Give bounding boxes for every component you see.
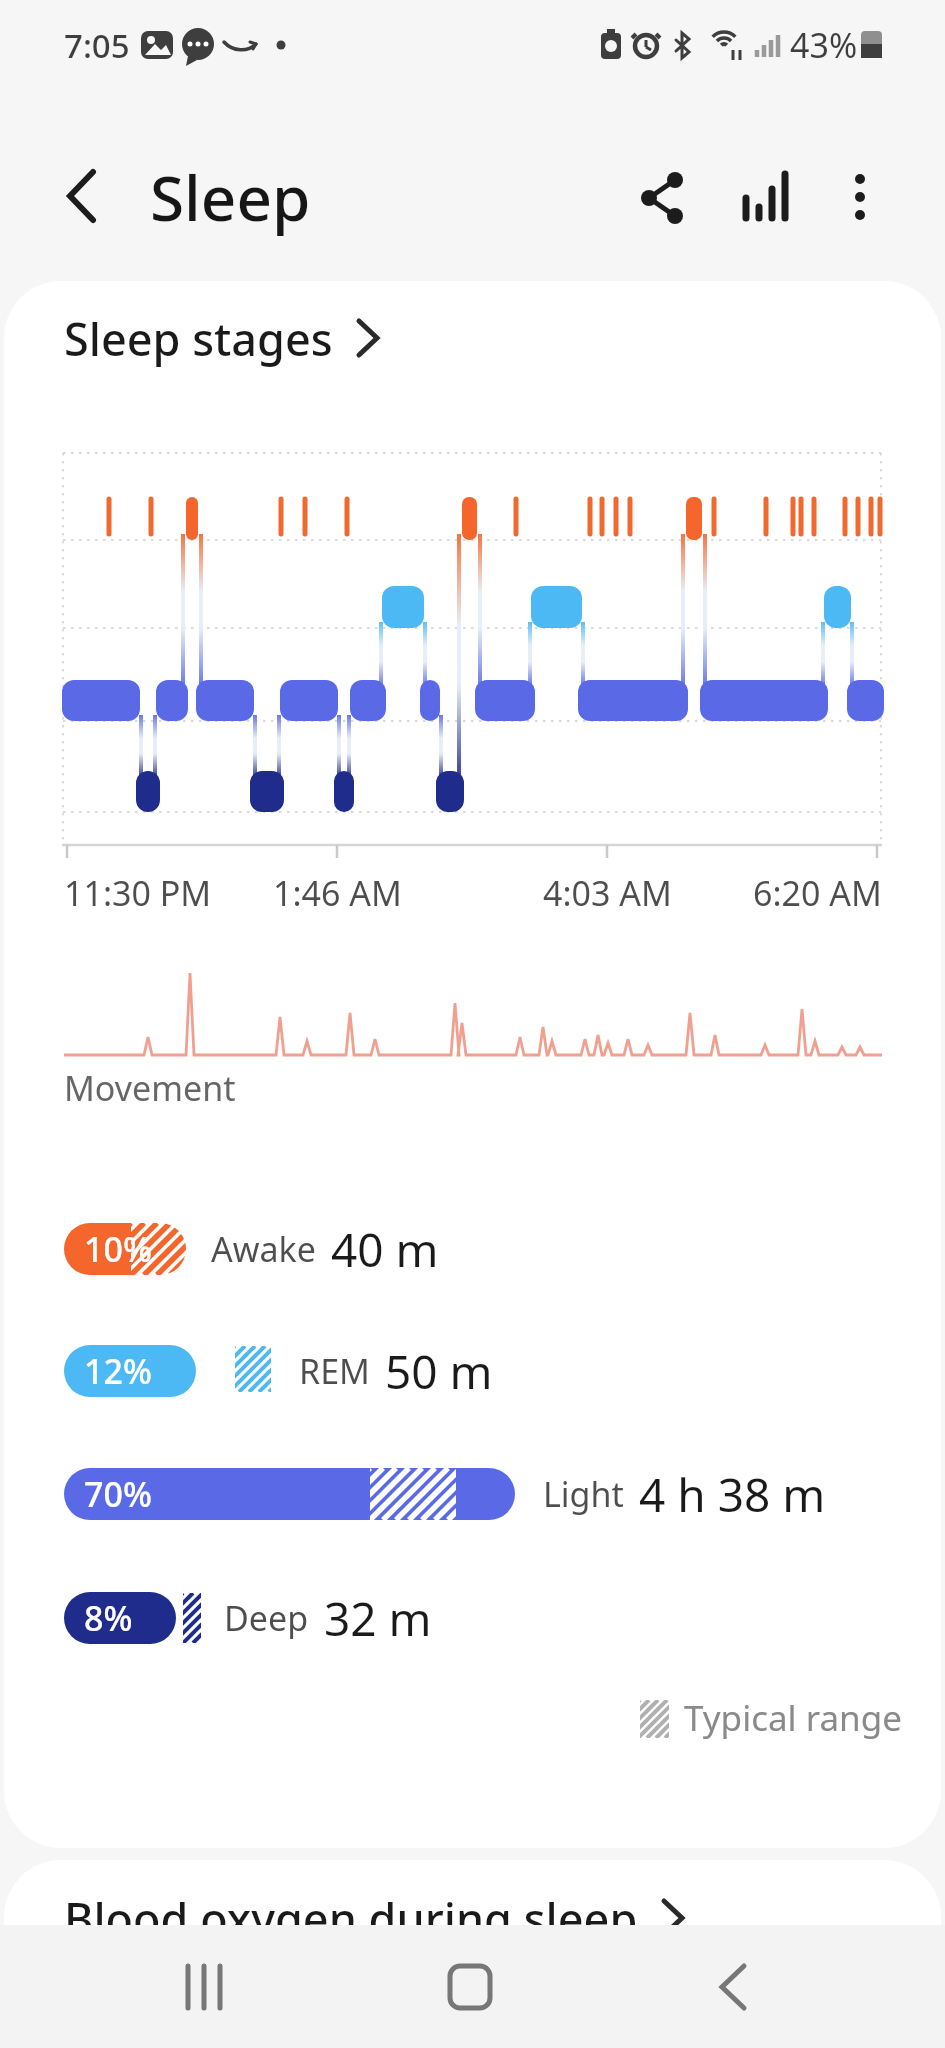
staticText: Deep [224, 1595, 309, 1641]
button[interactable] [150, 1935, 260, 2040]
staticText: 50 m [385, 1340, 493, 1403]
button[interactable]: Blood oxygen during sleep [64, 1880, 684, 1956]
staticText: Movement [64, 1065, 236, 1111]
staticText: 6:20 AM [753, 870, 882, 916]
staticText: Sleep stages [64, 308, 333, 369]
staticText: Sleep [150, 155, 311, 239]
staticText: 32 m [324, 1587, 432, 1650]
staticText: 43% [790, 22, 858, 68]
staticText: REM [299, 1348, 370, 1394]
button[interactable]: Sleep stages [64, 300, 379, 376]
button[interactable] [40, 156, 124, 240]
button[interactable] [680, 1935, 790, 2040]
button[interactable] [620, 156, 704, 240]
staticText: Blood oxygen during sleep [64, 1888, 638, 1949]
button[interactable] [820, 156, 904, 240]
staticText: 12% [84, 1348, 152, 1394]
button[interactable] [415, 1935, 525, 2040]
staticText: 4 h 38 m [639, 1463, 826, 1526]
staticText: 7:05 [64, 23, 130, 68]
staticText: Awake [211, 1226, 316, 1272]
staticText: 70% [84, 1471, 152, 1517]
staticText: 11:30 PM [64, 870, 212, 916]
button[interactable] [724, 156, 808, 240]
staticText: 8% [84, 1595, 133, 1641]
staticText: Light [543, 1471, 624, 1517]
staticText: 1:46 AM [273, 870, 402, 916]
staticText: 10% [84, 1226, 152, 1272]
staticText: 4:03 AM [543, 870, 672, 916]
staticText: 40 m [331, 1218, 439, 1281]
staticText: Typical range [684, 1694, 903, 1742]
